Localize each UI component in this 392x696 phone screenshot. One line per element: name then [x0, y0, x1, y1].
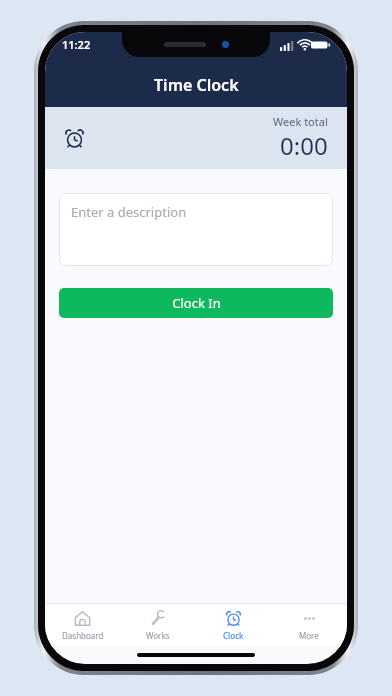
button[interactable]: More	[271, 604, 347, 647]
staticText: Clock In	[172, 294, 221, 312]
button[interactable]: Works	[120, 604, 195, 647]
button[interactable]: Clock	[195, 604, 271, 647]
staticText: Time Clock	[154, 74, 239, 96]
staticText: More	[299, 630, 319, 641]
button[interactable]: Clock In	[59, 288, 333, 318]
staticText: Clock	[223, 630, 244, 641]
staticText: 11:22	[62, 37, 91, 52]
staticText: Week total	[273, 114, 328, 129]
button[interactable]: Dashboard	[45, 604, 120, 647]
staticText: 0:00	[280, 129, 328, 162]
staticText: Dashboard	[62, 630, 104, 641]
staticText: Works	[146, 630, 170, 641]
staticText: Enter a description	[71, 203, 187, 221]
button[interactable]: Enter a description	[59, 193, 333, 266]
